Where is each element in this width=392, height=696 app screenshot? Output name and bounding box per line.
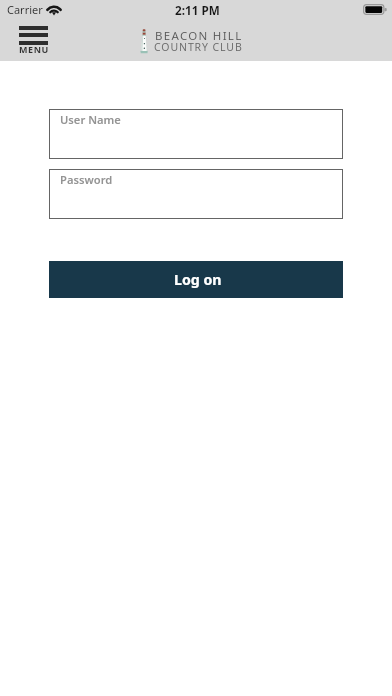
button[interactable]: Password [49,169,343,219]
button[interactable]: User Name [49,109,343,159]
staticText: Carrier [7,2,43,17]
staticText: User Name [60,112,121,127]
staticText: Log on [174,270,222,289]
button[interactable]: Log on [49,261,343,298]
staticText: Password [60,172,113,187]
staticText: BEACON HILL [155,28,243,44]
staticText: MENU [19,43,49,55]
staticText: COUNTRY CLUB [154,40,243,54]
button[interactable]: Menu [19,26,48,54]
staticText: 2:11 PM [175,2,220,18]
